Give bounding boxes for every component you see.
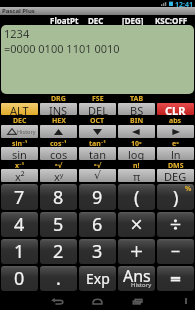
staticText: 5 [53, 212, 64, 237]
button[interactable]: 0 [1, 266, 38, 291]
staticText: DMS [168, 161, 184, 168]
staticText: BIN [130, 116, 144, 124]
staticText: BS [130, 103, 144, 115]
staticText: Pascal Plus [2, 7, 35, 15]
staticText: OCT [90, 116, 105, 124]
staticText: 9 [92, 185, 103, 210]
staticText: % [185, 184, 192, 194]
staticText: FSE [92, 94, 104, 102]
staticText: abs [169, 116, 182, 124]
staticText: 10ˣ [131, 139, 142, 146]
button[interactable]: BS [118, 103, 155, 115]
staticText: DEL [88, 103, 108, 115]
staticText: HEX [52, 116, 66, 124]
button[interactable]: √ [79, 169, 116, 182]
button[interactable]: . [40, 266, 77, 291]
staticText: 7 [14, 185, 25, 210]
staticText: INS [49, 103, 68, 115]
staticText: ) [173, 185, 179, 210]
button[interactable]: log [118, 147, 155, 160]
staticText: sin [12, 147, 27, 160]
button[interactable]: tan [79, 147, 116, 160]
button[interactable]: div [157, 212, 194, 237]
staticText: Ans [123, 266, 151, 287]
button[interactable]: x² [1, 169, 38, 182]
staticText: DEG [164, 169, 187, 182]
staticText: 1 [14, 239, 25, 264]
staticText: Exp [86, 269, 110, 288]
button[interactable]: xʸ [40, 169, 77, 182]
button[interactable]: eq [157, 266, 194, 291]
staticText: √ [94, 169, 102, 182]
button[interactable]: Right [157, 125, 194, 138]
staticText: KSC:OFF [155, 15, 188, 25]
staticText: DEC [13, 116, 27, 124]
button[interactable]: DEL [79, 103, 116, 115]
button[interactable]: ( [118, 184, 155, 210]
button[interactable]: minus [157, 239, 194, 264]
button[interactable]: Home [85, 293, 110, 309]
staticText: π [133, 169, 141, 182]
button[interactable]: sin [1, 147, 38, 160]
button[interactable]: 9 [79, 184, 116, 210]
staticText: DEC [88, 15, 104, 25]
staticText: ln [171, 147, 181, 160]
button[interactable]: History [1, 125, 38, 138]
staticText: xʸ [54, 169, 64, 182]
staticText: log [128, 147, 145, 160]
button[interactable]: 1 [1, 239, 38, 264]
staticText: . [56, 266, 61, 291]
button[interactable]: DEG [157, 169, 194, 182]
staticText: n! [133, 161, 140, 168]
button[interactable]: ALT [1, 103, 38, 115]
staticText: 1234 [4, 26, 30, 41]
staticText: CLR [165, 103, 186, 115]
button[interactable]: 8 [40, 184, 77, 210]
staticText: 3 [92, 239, 103, 264]
staticText: FloatPt [50, 15, 79, 25]
staticText: cos⁻¹ [50, 139, 67, 146]
staticText: 2 [53, 239, 64, 264]
button[interactable]: π [118, 169, 155, 182]
staticText: cos [50, 147, 68, 160]
button[interactable]: 2 [40, 239, 77, 264]
button[interactable]: ln [157, 147, 194, 160]
staticText: x² [15, 169, 25, 182]
button[interactable]: CLR [157, 103, 194, 115]
staticText: 8 [53, 185, 64, 210]
button[interactable]: Ans History [118, 266, 155, 291]
staticText: History [17, 128, 36, 135]
staticText: DRG [51, 94, 66, 102]
button[interactable]: 6 [79, 212, 116, 237]
button[interactable]: 5 [40, 212, 77, 237]
button[interactable]: ) [157, 184, 194, 210]
button[interactable]: 3 [79, 239, 116, 264]
button[interactable]: Left [118, 125, 155, 138]
staticText: ALT [10, 103, 29, 115]
staticText: TAB [130, 94, 144, 102]
button[interactable]: More options [180, 295, 192, 307]
button[interactable]: Recent apps [125, 293, 150, 309]
staticText: tan⁻¹ [89, 139, 106, 146]
staticText: 12:41 [175, 0, 193, 7]
button[interactable]: 4 [1, 212, 38, 237]
staticText: ˣ√ [55, 161, 63, 168]
button[interactable]: times [118, 212, 155, 237]
staticText: ( [134, 185, 140, 210]
staticText: ˣ√ [94, 161, 102, 168]
button[interactable]: Down [79, 125, 116, 138]
button[interactable]: 7 [1, 184, 38, 210]
button[interactable]: Up [40, 125, 77, 138]
staticText: sin⁻¹ [12, 139, 28, 146]
staticText: 4 [14, 212, 25, 237]
staticText: [DEG] [122, 15, 144, 25]
staticText: 6 [92, 212, 103, 237]
staticText: =0000 0100 1101 0010 [4, 41, 120, 56]
button[interactable]: plus [118, 239, 155, 264]
button[interactable]: Back [45, 293, 70, 309]
staticText: 0 [14, 266, 25, 291]
button[interactable]: INS [40, 103, 77, 115]
button[interactable]: Exp [79, 266, 116, 291]
button[interactable]: cos [40, 147, 77, 160]
staticText: x⁻¹ [15, 161, 25, 168]
